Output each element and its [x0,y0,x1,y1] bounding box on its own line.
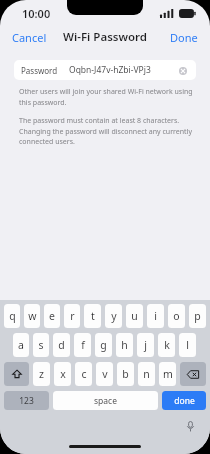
staticText: Done [170,30,198,45]
button[interactable]: y [105,304,122,328]
staticText: Cancel [12,30,47,45]
staticText: v [102,367,108,381]
button[interactable]: k [158,333,175,357]
staticText: q [9,309,16,323]
button[interactable]: Backspace [180,362,206,386]
button[interactable]: Done [158,27,210,48]
staticText: k [164,338,170,352]
staticText: p [194,309,201,323]
button[interactable]: a [13,333,29,357]
staticText: 10:00 [22,6,51,21]
staticText: a [18,338,24,352]
staticText: b [122,367,129,381]
button[interactable]: n [138,362,155,386]
button[interactable]: d [53,333,70,357]
staticText: z [39,367,44,381]
button[interactable]: g [95,333,112,357]
button[interactable]: t [84,304,101,328]
staticText: n [143,367,150,381]
staticText: Wi-Fi Password [63,29,148,45]
staticText: Password [21,65,58,76]
button[interactable]: b [117,362,134,386]
button[interactable]: s [33,333,49,357]
button[interactable]: x [54,362,71,386]
button[interactable]: Cancel [0,27,59,48]
button[interactable]: u [126,304,143,328]
staticText: h [121,338,128,352]
button[interactable]: Password [14,60,196,80]
button[interactable]: h [116,333,133,357]
staticText: x [60,367,66,381]
staticText: space [94,395,117,407]
staticText: t [91,309,95,323]
staticText: w [28,309,37,323]
staticText: c [81,367,87,381]
button[interactable]: c [75,362,92,386]
staticText: o [173,309,180,323]
staticText: g [100,338,107,352]
staticText: j [144,338,147,352]
staticText: Other users will join your shared Wi-Fi … [19,87,194,107]
button[interactable]: 123 [4,391,49,410]
button[interactable]: i [147,304,164,328]
staticText: Oqbn-J47v-hZbi-VPj3 [69,64,151,76]
button[interactable]: q [4,304,20,328]
staticText: s [38,338,44,352]
staticText: r [70,309,75,323]
button[interactable]: z [33,362,50,386]
button[interactable]: m [159,362,176,386]
staticText: done [174,395,195,407]
button[interactable]: space [53,391,158,410]
button[interactable]: Clear text [176,64,189,77]
button[interactable]: l [179,333,196,357]
button[interactable]: p [189,304,206,328]
staticText: i [154,309,157,323]
button[interactable]: done [162,391,206,410]
staticText: m [163,367,173,381]
button[interactable]: Dictation [180,416,200,436]
staticText: u [131,309,138,323]
button[interactable]: v [96,362,113,386]
button[interactable]: e [44,304,60,328]
button[interactable]: r [64,304,80,328]
staticText: l [186,338,189,352]
staticText: e [49,309,55,323]
button[interactable]: Shift [4,362,29,386]
staticText: f [81,338,85,352]
staticText: 123 [19,395,34,407]
button[interactable]: j [137,333,154,357]
staticText: d [58,338,65,352]
button[interactable]: o [168,304,185,328]
button[interactable]: w [24,304,40,328]
staticText: The password must contain at least 8 cha… [19,116,194,146]
staticText: y [111,309,117,323]
button[interactable]: f [74,333,91,357]
